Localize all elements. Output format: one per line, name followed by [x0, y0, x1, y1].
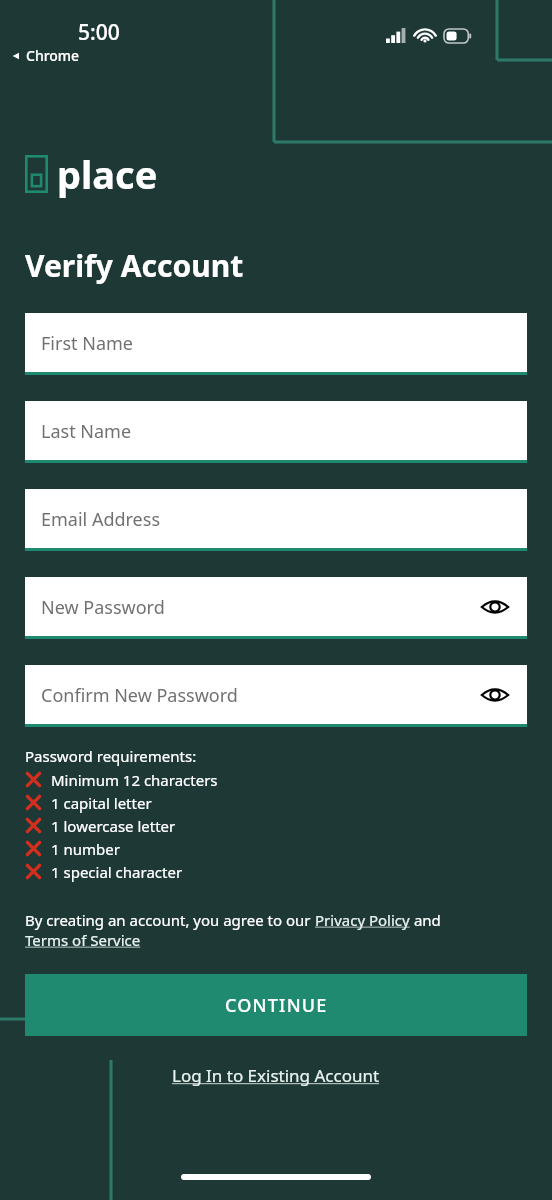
button[interactable]: Last Name [25, 401, 527, 463]
staticText: Last Name [41, 419, 132, 444]
staticText: Email Address [41, 507, 161, 532]
button[interactable]: Show password [480, 598, 510, 616]
staticText: Chrome [26, 46, 80, 65]
staticText: and [410, 910, 441, 930]
button[interactable]: New Password [25, 577, 527, 639]
staticText: 1 number [51, 839, 120, 859]
other: Show password [480, 598, 510, 616]
staticText: CONTINUE [225, 993, 328, 1018]
staticText: place [57, 148, 158, 200]
button[interactable]: Email Address [25, 489, 527, 551]
button[interactable]: First Name [25, 313, 527, 375]
staticText: Confirm New Password [41, 683, 238, 708]
staticText: Minimum 12 characters [51, 770, 218, 790]
staticText: Password requirements: [25, 746, 197, 766]
staticText: 1 capital letter [51, 793, 152, 813]
button[interactable]: Confirm New Password [25, 665, 527, 727]
staticText: First Name [41, 331, 133, 356]
staticText: 1 lowercase letter [51, 816, 176, 836]
button[interactable]: Show password [480, 686, 510, 704]
button[interactable]: Privacy Policy [315, 910, 410, 930]
button[interactable]: Log In to Existing Account [172, 1064, 380, 1087]
staticText: 1 special character [51, 862, 183, 882]
staticText: 5:00 [78, 18, 120, 47]
staticText: New Password [41, 595, 165, 620]
staticText: Verify Account [25, 245, 244, 286]
button[interactable]: Terms of Service [25, 930, 141, 950]
other: Show password [480, 686, 510, 704]
button[interactable]: CONTINUE [25, 974, 527, 1036]
staticText: By creating an account, you agree to our [25, 910, 315, 930]
